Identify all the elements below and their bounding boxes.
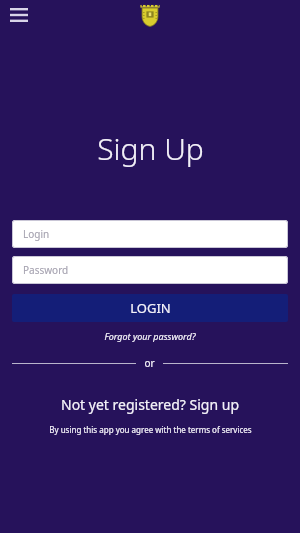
staticText: LOGIN: [130, 299, 171, 317]
staticText: Password: [23, 263, 69, 277]
button[interactable]: LOGIN: [12, 294, 288, 322]
button[interactable]: Password: [12, 256, 288, 284]
button[interactable]: App logo: [137, 3, 163, 29]
staticText: or: [144, 356, 155, 370]
button[interactable]: Open navigation menu: [6, 2, 32, 28]
staticText: Forgot your password?: [104, 330, 196, 342]
staticText: Login: [23, 227, 50, 241]
button[interactable]: Forgot your password?: [0, 330, 300, 342]
staticText: Sign Up: [97, 128, 204, 169]
staticText: By using this app you agree with the ter…: [49, 424, 252, 435]
button[interactable]: Login: [12, 220, 288, 248]
button[interactable]: Not yet registered? Sign up: [0, 395, 300, 414]
staticText: Not yet registered? Sign up: [61, 395, 239, 414]
